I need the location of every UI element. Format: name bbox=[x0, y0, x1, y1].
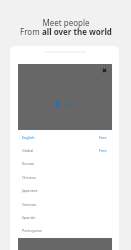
button[interactable]: German bbox=[10, 198, 119, 211]
button[interactable]: Korean bbox=[10, 157, 119, 170]
staticText: 1000 bbox=[64, 103, 73, 108]
staticText: English bbox=[22, 135, 35, 140]
staticText: Free bbox=[99, 135, 107, 140]
staticText: Meet people bbox=[42, 17, 90, 28]
staticText: Portuguese bbox=[22, 228, 43, 233]
button[interactable]: Japanese bbox=[10, 184, 119, 197]
button[interactable]: Global bbox=[10, 144, 119, 157]
staticText: Global bbox=[22, 148, 34, 153]
button[interactable]: Close ad bbox=[100, 66, 109, 75]
staticText: all over the world bbox=[42, 26, 112, 37]
staticText: Free bbox=[99, 148, 107, 153]
button[interactable]: English bbox=[10, 131, 119, 144]
button[interactable]: Portuguese bbox=[10, 224, 119, 237]
staticText: Chinese bbox=[22, 175, 36, 180]
button[interactable]: Chinese bbox=[10, 171, 119, 184]
staticText: Spanish bbox=[22, 215, 36, 220]
staticText: From bbox=[20, 26, 42, 37]
staticText: Japanese bbox=[22, 188, 38, 193]
staticText: German bbox=[22, 202, 37, 207]
staticText: Korean bbox=[22, 161, 35, 166]
button[interactable]: Spanish bbox=[10, 211, 119, 224]
